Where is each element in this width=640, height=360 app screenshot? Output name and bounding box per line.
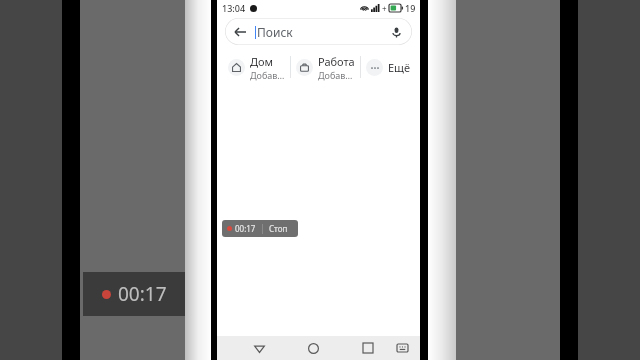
- staticText: +: [382, 3, 387, 14]
- button[interactable]: Дом: [223, 54, 290, 81]
- button[interactable]: Back: [247, 336, 271, 360]
- button[interactable]: Home: [301, 336, 325, 360]
- staticText: Добав…: [250, 69, 285, 81]
- button[interactable]: Keyboard: [390, 336, 414, 360]
- staticText: 13:04: [222, 2, 246, 14]
- staticText: Стоп: [269, 223, 288, 234]
- button[interactable]: Recording 00:17: [83, 272, 185, 316]
- staticText: Ещё: [388, 60, 411, 75]
- staticText: 00:17: [118, 281, 167, 307]
- button[interactable]: Ещё: [361, 59, 416, 76]
- staticText: 19: [405, 2, 416, 14]
- button[interactable]: Back: [225, 18, 412, 45]
- button[interactable]: Stop recording: [222, 220, 298, 237]
- staticText: Работа: [318, 54, 355, 69]
- button[interactable]: Работа: [291, 54, 360, 81]
- staticText: Дом: [250, 54, 274, 69]
- button[interactable]: Recent apps: [356, 336, 380, 360]
- button[interactable]: Back: [232, 24, 248, 40]
- staticText: Поиск: [257, 24, 293, 40]
- button[interactable]: Voice search: [388, 24, 404, 40]
- staticText: 00:17: [235, 223, 256, 234]
- staticText: Добав…: [318, 69, 353, 81]
